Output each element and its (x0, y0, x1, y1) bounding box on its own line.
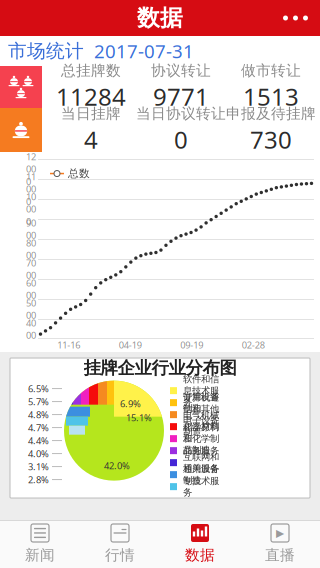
staticText: 6.5% (28, 382, 49, 395)
staticText: 电气机械和器材制造 (183, 409, 219, 444)
staticText: 行情 (105, 546, 135, 564)
staticText: 市场统计 (8, 39, 84, 62)
staticText: 通用设备制造 (183, 463, 219, 486)
staticText: 04-19 (119, 339, 142, 351)
staticText: 0 (174, 124, 188, 155)
staticText: 当日协议转让 (136, 105, 226, 123)
staticText: 1513 (243, 81, 299, 112)
staticText: 当日挂牌 (61, 105, 121, 123)
staticText: 计算机通信和其他电子设备制造 (183, 392, 219, 438)
staticText: 4.0% (28, 447, 49, 460)
staticText: 直播 (265, 546, 295, 564)
staticText: 42.0% (104, 459, 130, 472)
staticText: ▶ (276, 527, 284, 539)
staticText: 4.7% (28, 421, 49, 434)
staticText: 7000 (26, 257, 36, 281)
staticText: 11-16 (57, 339, 80, 351)
staticText: 2017-07-31 (94, 39, 194, 63)
staticText: 专用设备制造 (183, 391, 219, 414)
staticText: 6000 (26, 277, 36, 301)
staticText: 4 (84, 124, 98, 155)
staticText: 3.1% (28, 460, 49, 473)
staticText: 4.8% (28, 408, 49, 421)
staticText: 730 (250, 124, 292, 155)
staticText: 9000 (26, 217, 36, 241)
button[interactable]: 数据 (160, 520, 240, 568)
staticText: 化学原料和化学制品制造 (183, 421, 219, 456)
staticText: 软件和信息技术服务 (183, 373, 219, 408)
staticText: 2.8% (28, 473, 49, 486)
staticText: 数据 (185, 546, 215, 564)
staticText: 商务服务 (183, 445, 219, 456)
staticText: 02-28 (242, 339, 265, 351)
staticText: 12000 (26, 150, 36, 188)
button[interactable]: 新闻 (0, 520, 80, 568)
staticText: 5.7% (28, 395, 49, 408)
staticText: 协议转让 (151, 62, 211, 80)
staticText: 互联网和相关服务 (183, 451, 219, 474)
staticText: 申报及待挂牌 (226, 105, 316, 123)
button[interactable]: ▶ (240, 520, 320, 568)
staticText: 10000 (26, 190, 36, 228)
staticText: 挂牌企业行业分布图 (83, 357, 236, 379)
staticText: 11284 (56, 81, 126, 112)
staticText: 做市转让 (241, 62, 301, 80)
staticText: 总挂牌数 (61, 62, 121, 80)
button[interactable]: 行情 (80, 520, 160, 568)
staticText: 数据 (137, 4, 183, 32)
button[interactable]: 更多 (271, 0, 320, 36)
staticText: 6.9% (120, 397, 141, 410)
staticText: 15.1% (126, 411, 152, 424)
staticText: 新闻 (25, 546, 55, 564)
staticText: 5000 (26, 297, 36, 321)
staticText: 专技术服务 (183, 475, 219, 498)
staticText: 11000 (26, 170, 36, 208)
staticText: 4000 (26, 317, 36, 341)
staticText: 9771 (153, 81, 209, 112)
staticText: 8000 (26, 237, 36, 261)
staticText: 总数 (68, 167, 90, 180)
staticText: 09-19 (180, 339, 203, 351)
staticText: 4.4% (28, 434, 49, 447)
